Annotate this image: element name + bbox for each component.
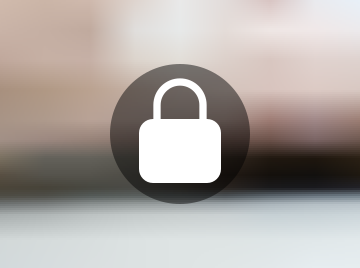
button[interactable]: Locked — [0, 0, 360, 268]
